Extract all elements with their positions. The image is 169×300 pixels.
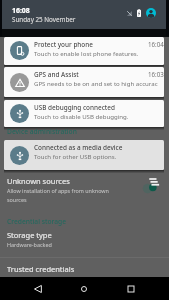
staticText: Allow installation of apps from unknown … <box>7 187 125 203</box>
button[interactable]: Recent apps <box>115 277 147 300</box>
staticText: 16:04 <box>148 40 164 48</box>
button[interactable]: GPS and Assist <box>4 67 164 97</box>
staticText: Trusted credentials <box>7 264 75 274</box>
button[interactable]: Unknown sources switch <box>138 177 162 193</box>
button[interactable]: Connected as a media device <box>4 140 164 170</box>
staticText: Touch for other USB options. <box>34 152 164 160</box>
button[interactable]: Protect your phone <box>4 37 164 65</box>
staticText: USB debugging connected <box>34 103 162 112</box>
staticText: Touch to enable lost phone features. <box>34 49 164 57</box>
staticText: Connected as a media device <box>34 143 162 152</box>
staticText: Protect your phone <box>34 40 146 49</box>
staticText: Storage type <box>7 230 52 240</box>
button[interactable]: Storage type <box>7 230 169 248</box>
staticText: 16:08 <box>12 6 30 15</box>
button[interactable]: USB debugging connected <box>4 100 164 127</box>
staticText: Hardware-backed <box>7 241 52 248</box>
staticText: Credential storage <box>7 217 67 226</box>
staticText: Device administration <box>7 127 77 136</box>
staticText: Sunday 25 November <box>12 15 76 24</box>
button[interactable]: Trusted credentials <box>0 258 169 278</box>
button[interactable]: Unknown sources <box>0 173 169 207</box>
button[interactable]: Home <box>68 277 100 300</box>
staticText: Touch to disable USB debugging. <box>34 112 164 120</box>
staticText: GPS and Assist <box>34 70 146 79</box>
staticText: Unknown sources <box>7 176 70 186</box>
staticText: 16:03 <box>148 70 164 78</box>
button[interactable]: Back <box>22 277 54 300</box>
button[interactable]: User account <box>146 8 156 18</box>
staticText: GPS needs to be on and set to high accur… <box>34 79 164 87</box>
